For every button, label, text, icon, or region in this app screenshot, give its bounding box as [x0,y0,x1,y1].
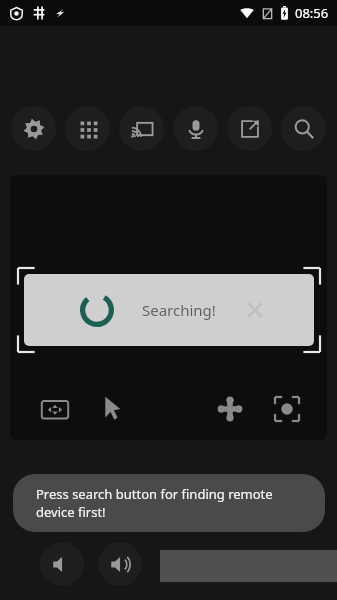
staticText: Press search button for finding remote d… [36,485,305,521]
button[interactable]: Searching! [24,274,314,346]
button[interactable]: Apps [65,106,110,151]
button[interactable]: D-pad [216,395,244,423]
button[interactable]: Settings [11,106,56,151]
button[interactable]: Pointer [98,394,126,422]
button[interactable]: Voice [173,106,218,151]
staticText: 08:56 [295,4,329,22]
staticText: Searching! [142,300,216,320]
button[interactable]: Focus [272,394,302,424]
button[interactable]: Search [281,106,326,151]
button[interactable]: Volume down [40,542,84,586]
button[interactable]: Cancel search [242,297,268,323]
button[interactable]: Open [227,106,272,151]
button[interactable]: Cast [119,106,164,151]
button[interactable]: Volume up [98,542,142,586]
button[interactable]: Press search button for finding remote d… [13,474,325,532]
button[interactable]: Screen [40,395,70,425]
